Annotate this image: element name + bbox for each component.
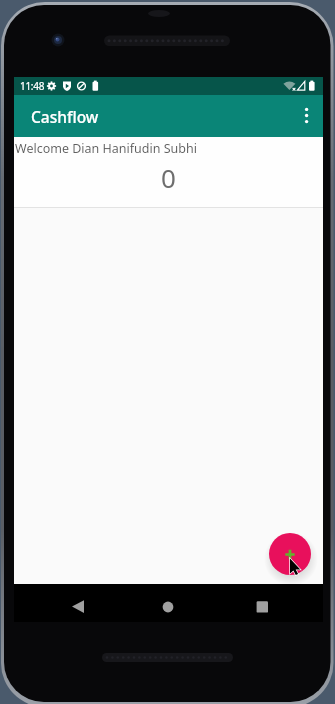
- staticText: Cashflow: [31, 106, 99, 127]
- button[interactable]: [289, 95, 323, 137]
- staticText: Welcome Dian Hanifudin Subhi: [15, 140, 197, 157]
- button[interactable]: [117, 584, 220, 622]
- button[interactable]: [269, 533, 311, 575]
- staticText: 0: [161, 160, 176, 195]
- staticText: 11:48: [20, 79, 45, 93]
- button[interactable]: [220, 584, 323, 622]
- button[interactable]: [14, 584, 117, 622]
